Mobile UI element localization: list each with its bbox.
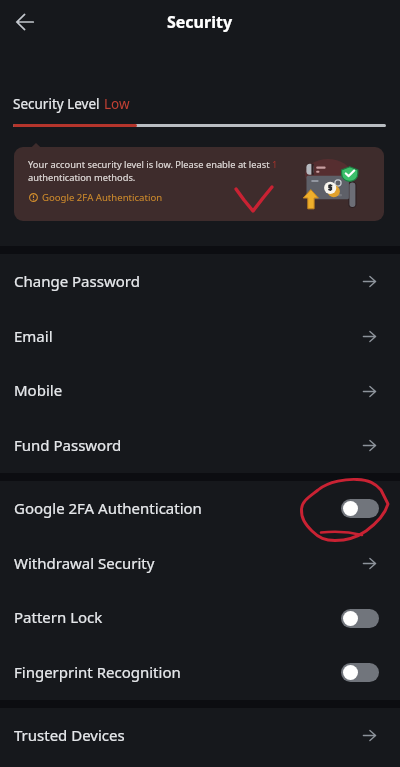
button[interactable]: Trusted Devices xyxy=(0,708,400,763)
staticText: Change Password xyxy=(14,271,140,291)
button[interactable]: Email xyxy=(0,309,400,364)
staticText: Email xyxy=(14,326,53,346)
staticText: Your account security level is low. Plea… xyxy=(28,158,278,184)
button[interactable]: Toggle Pattern Lock xyxy=(341,609,379,628)
button[interactable]: Back xyxy=(9,6,41,38)
button[interactable]: Fingerprint Recognition xyxy=(0,645,400,700)
staticText: Mobile xyxy=(14,380,63,400)
staticText: Fund Password xyxy=(14,435,122,455)
staticText: Google 2FA Authentication xyxy=(42,191,163,204)
button[interactable]: Toggle Google 2FA Authentication xyxy=(341,499,379,518)
staticText: Trusted Devices xyxy=(14,725,125,745)
staticText: Pattern Lock xyxy=(14,607,103,627)
button[interactable]: Google 2FA Authentication xyxy=(0,481,400,536)
staticText: Security Level xyxy=(13,95,104,113)
staticText: Google 2FA Authentication xyxy=(14,498,202,518)
staticText: Low xyxy=(104,95,130,113)
button[interactable]: Toggle Fingerprint Recognition xyxy=(341,663,379,682)
button[interactable]: Mobile xyxy=(0,364,400,418)
staticText: Security xyxy=(167,11,233,33)
button[interactable]: Pattern Lock xyxy=(0,591,400,645)
button[interactable]: Withdrawal Security xyxy=(0,536,400,591)
button[interactable]: Fund Password xyxy=(0,418,400,473)
staticText: Withdrawal Security xyxy=(14,553,155,573)
button[interactable]: Change Password xyxy=(0,254,400,309)
staticText: Fingerprint Recognition xyxy=(14,662,181,682)
